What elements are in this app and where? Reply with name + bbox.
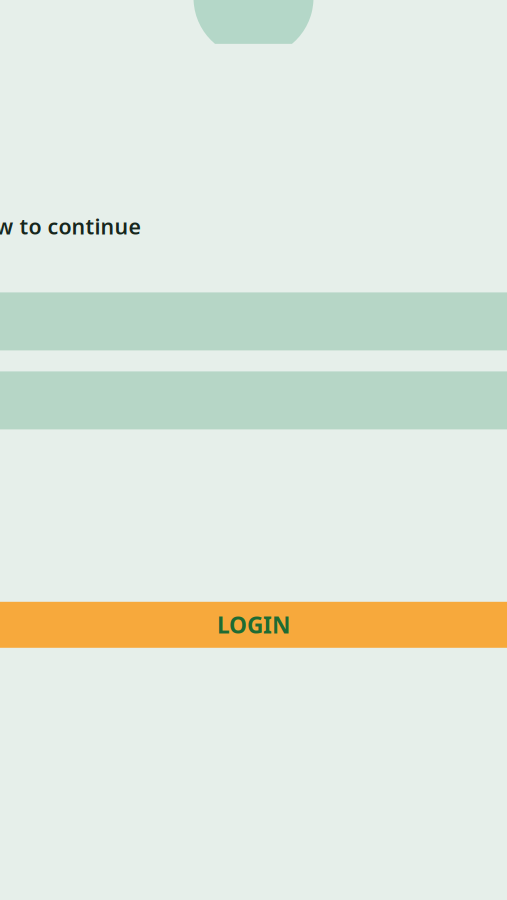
staticText: LOGIN (217, 610, 290, 640)
staticText: Please enter the details below to contin… (0, 212, 140, 240)
button[interactable]: LOGIN (0, 602, 507, 648)
